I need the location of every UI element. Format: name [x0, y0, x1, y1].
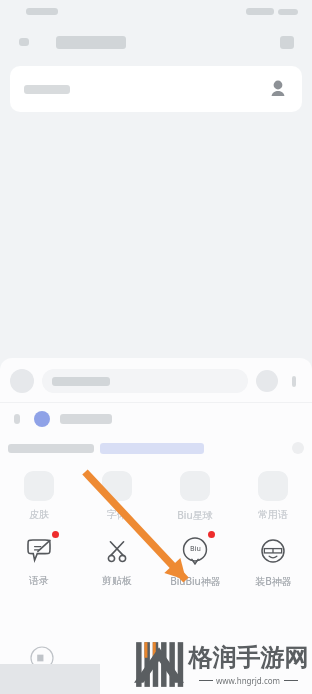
button[interactable]: More	[276, 31, 298, 53]
button[interactable]: Voice	[30, 646, 54, 670]
other: Search	[268, 79, 288, 99]
staticText: www.hngrjd.com	[216, 675, 281, 686]
staticText: BiuBiu神器	[170, 574, 221, 588]
other: BiuBiu神器	[182, 538, 208, 564]
staticText: 剪贴板	[102, 574, 132, 587]
button[interactable]: 皮肤	[0, 471, 78, 521]
button[interactable]: 语录	[0, 534, 78, 587]
other: 剪贴板	[106, 540, 128, 562]
button[interactable]: BiuBiu神器	[156, 534, 234, 588]
other: 语录	[28, 540, 50, 562]
button[interactable]: Emoji	[256, 370, 278, 392]
button[interactable]	[8, 435, 304, 461]
button[interactable]: Biu星球	[156, 471, 234, 522]
staticText: 语录	[29, 574, 49, 587]
button[interactable]: 常用语	[234, 471, 312, 521]
staticText: 字体	[107, 508, 127, 521]
button[interactable]: 装B神器	[234, 534, 312, 588]
button[interactable]: Menu	[286, 373, 302, 389]
button[interactable]: Search	[10, 66, 302, 112]
button[interactable]: 剪贴板	[78, 534, 156, 587]
staticText: Biu	[190, 544, 201, 554]
button[interactable]: Keyboard	[10, 369, 34, 393]
staticText: 常用语	[258, 508, 288, 521]
button[interactable]	[14, 403, 298, 435]
staticText: 皮肤	[29, 508, 49, 521]
button[interactable]: Back	[14, 32, 34, 52]
staticText: 装B神器	[255, 574, 292, 588]
other: 装B神器	[261, 539, 285, 563]
staticText: 格润手游网	[188, 643, 308, 673]
staticText: Biu星球	[177, 508, 213, 522]
button[interactable]	[42, 369, 248, 393]
button[interactable]: 字体	[78, 471, 156, 521]
